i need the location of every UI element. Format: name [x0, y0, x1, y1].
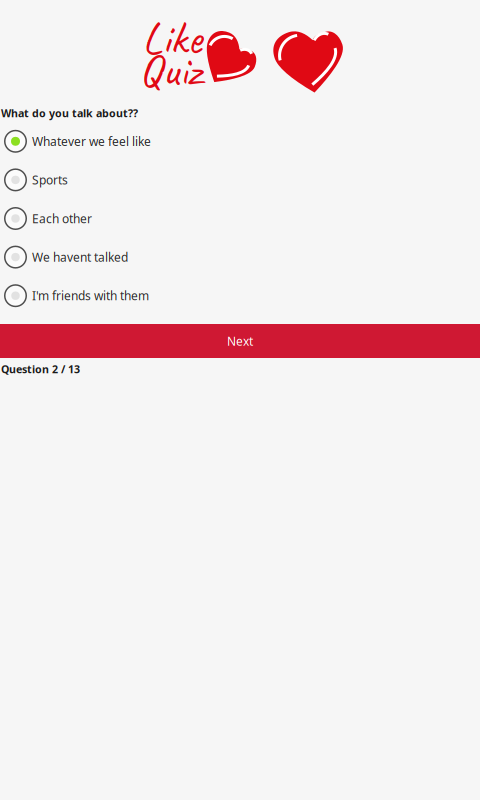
staticText: Each other [32, 210, 92, 227]
staticText: We havent talked [32, 249, 128, 265]
button[interactable]: Sports [0, 161, 480, 199]
staticText: Whatever we feel like [32, 133, 151, 149]
staticText: Sports [32, 172, 68, 188]
button[interactable]: I'm friends with them [0, 276, 480, 315]
button[interactable]: Next [0, 324, 480, 358]
staticText: What do you talk about?? [1, 106, 138, 120]
button[interactable]: We havent talked [0, 238, 480, 276]
staticText: Quiz [139, 41, 201, 98]
staticText: Like [142, 9, 202, 66]
button[interactable]: Whatever we feel like [0, 122, 480, 161]
staticText: Question 2 / 13 [1, 362, 80, 376]
button[interactable]: Each other [0, 199, 480, 238]
staticText: I'm friends with them [32, 287, 149, 304]
staticText: Next [227, 333, 253, 349]
